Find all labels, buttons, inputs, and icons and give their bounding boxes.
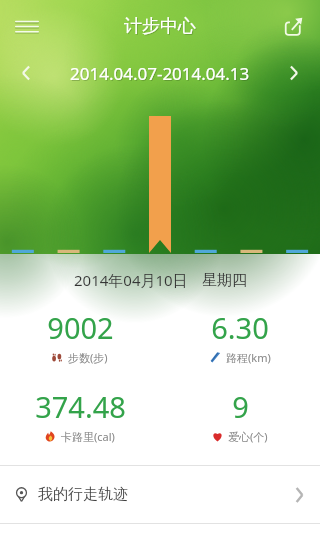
button[interactable]: Previous week bbox=[10, 57, 42, 89]
staticText: 2014.04.07-2014.04.13 bbox=[71, 63, 251, 86]
staticText: 我的行走轨迹 bbox=[38, 485, 128, 504]
staticText: 计步中心 bbox=[124, 15, 196, 38]
staticText: 2014年04月10日 bbox=[74, 270, 188, 290]
button[interactable]: 6.30 bbox=[160, 308, 320, 365]
staticText: 计步中心 bbox=[125, 16, 197, 39]
button[interactable]: Menu bbox=[8, 7, 46, 45]
staticText: 爱心(个) bbox=[228, 429, 268, 444]
staticText: 374.48 bbox=[35, 387, 126, 426]
staticText: 卡路里(cal) bbox=[61, 429, 115, 444]
staticText: 9002 bbox=[47, 308, 114, 347]
staticText: 9 bbox=[232, 387, 249, 426]
button[interactable]: 9002 bbox=[0, 308, 160, 365]
button[interactable]: Share bbox=[274, 7, 312, 45]
button[interactable]: Next week bbox=[278, 57, 310, 89]
staticText: 星期四 bbox=[202, 271, 247, 290]
button[interactable]: 374.48 bbox=[0, 387, 160, 444]
button[interactable]: 9 bbox=[160, 387, 320, 444]
button[interactable]: 我的行走轨迹 bbox=[0, 466, 320, 523]
staticText: 路程(km) bbox=[226, 350, 271, 365]
staticText: 步数(步) bbox=[68, 350, 108, 365]
staticText: 2014.04.07-2014.04.13 bbox=[70, 62, 250, 85]
staticText: 6.30 bbox=[211, 308, 269, 347]
